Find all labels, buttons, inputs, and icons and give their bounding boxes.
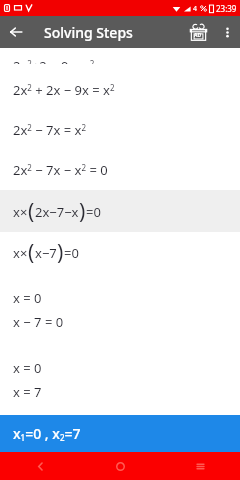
staticText: Solving Steps [44,23,133,42]
button[interactable]: x× [0,232,240,272]
staticText: ) [79,197,86,226]
staticText: 2x2 − 7x = x2 [13,121,87,139]
button[interactable]: x× [0,190,240,232]
button[interactable]: x1=0 , x2=7 [0,415,240,452]
button[interactable]: 2x2 − 7x = x2 [0,110,240,150]
staticText: x − 7 = 0 [13,313,64,331]
staticText: x = 0 [13,359,42,377]
staticText: x× [13,244,28,262]
button[interactable]: Watch ad for reward [182,16,214,48]
button[interactable]: x = 7 [0,380,240,404]
staticText: 2x−7−x [35,203,79,221]
staticText: =0 [64,244,79,262]
staticText: x = 0 [13,289,42,307]
staticText: 2x2 − 7x − x2 = 0 [13,161,108,179]
button[interactable]: 2x2 − 7x − x2 = 0 [0,150,240,190]
staticText: x× [13,203,28,221]
staticText: ) [57,238,64,267]
button[interactable]: More options [214,19,240,45]
staticText: ( [28,197,35,226]
staticText: AD [194,32,202,39]
button[interactable]: x = 0 [0,356,240,380]
button[interactable]: Home [80,452,160,480]
button[interactable]: x − 7 = 0 [0,310,240,334]
staticText: 4 [193,4,198,14]
staticText: 23:39 [216,3,237,14]
staticText: x1=0 , x2=7 [13,424,81,444]
staticText: 2x2 + 2x − 9x = x2 [13,81,115,99]
staticText: =0 [86,203,101,221]
button[interactable]: Recent apps [160,452,240,480]
button[interactable]: Back [0,452,80,480]
staticText: x−7 [35,244,57,262]
button[interactable]: 2x2 + 2x − 9x = x2 [0,70,240,110]
staticText: 2x2+2x−9x=x2 [13,57,95,64]
button[interactable]: x = 0 [0,286,240,310]
staticText: ( [28,238,35,267]
button[interactable]: Back [0,16,32,48]
staticText: x = 7 [13,383,42,401]
